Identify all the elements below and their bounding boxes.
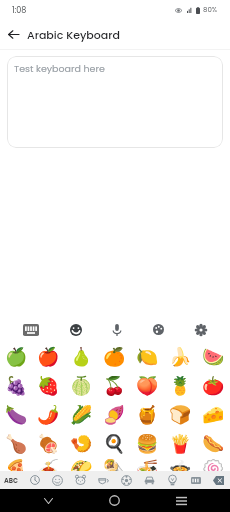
button[interactable]: Emoji	[65, 400, 98, 429]
staticText: 🍆	[5, 404, 28, 425]
staticText: 🍍	[169, 375, 192, 396]
button[interactable]: Home	[81, 489, 148, 512]
staticText: 🍞	[169, 404, 192, 425]
staticText: 🍈	[70, 375, 93, 396]
button[interactable]: Emoji	[0, 458, 32, 471]
button[interactable]: Food and drink	[92, 471, 115, 489]
staticText: 🍯	[136, 404, 159, 425]
button[interactable]: Emoji	[0, 400, 32, 429]
button[interactable]: Emoji	[98, 371, 131, 400]
staticText: 🌯	[103, 458, 126, 471]
button[interactable]: Emoji	[164, 458, 197, 471]
button[interactable]: Emoji	[197, 429, 230, 458]
button[interactable]: Emoji	[197, 400, 230, 429]
button[interactable]: Emoji	[65, 429, 98, 458]
staticText: 🌭	[202, 433, 225, 454]
button[interactable]: Travel and places	[138, 471, 161, 489]
button[interactable]: Emoji	[131, 400, 164, 429]
staticText: 🌮	[70, 458, 93, 471]
button[interactable]: Theme	[144, 313, 172, 342]
button[interactable]: Emoji	[197, 342, 230, 371]
button[interactable]: Voice input	[103, 313, 131, 342]
button[interactable]: Test keyboard here	[7, 56, 223, 148]
button[interactable]: Back	[2, 23, 25, 46]
staticText: 🍇	[5, 375, 28, 396]
button[interactable]: Emoji	[32, 429, 65, 458]
button[interactable]: Emoji	[98, 400, 131, 429]
button[interactable]: Symbols	[184, 471, 207, 489]
staticText: 🍊	[103, 346, 126, 367]
button[interactable]: Smileys and people	[46, 471, 69, 489]
staticText: 🍓	[37, 375, 60, 396]
button[interactable]: Emoji	[0, 371, 32, 400]
staticText: 🍠	[103, 404, 126, 425]
staticText: 🍳	[103, 433, 126, 454]
button[interactable]: Keyboard layout	[17, 313, 45, 342]
button[interactable]: Activities	[115, 471, 138, 489]
button[interactable]: Emoji	[32, 458, 65, 471]
staticText: ABC	[4, 476, 19, 485]
button[interactable]: Emoji	[197, 458, 230, 471]
button[interactable]: Emoji	[98, 342, 131, 371]
button[interactable]: Animals and nature	[69, 471, 92, 489]
button[interactable]: Emoji	[164, 400, 197, 429]
staticText: 🍤	[70, 433, 93, 454]
button[interactable]: Hide keyboard	[15, 489, 81, 512]
staticText: 🍥	[202, 458, 225, 471]
staticText: 🍔	[136, 433, 159, 454]
button[interactable]: Emoji	[65, 458, 98, 471]
button[interactable]: Emoji	[131, 458, 164, 471]
button[interactable]: Emoji	[131, 371, 164, 400]
button[interactable]: Emoji	[65, 371, 98, 400]
staticText: 🍋	[136, 346, 159, 367]
button[interactable]: Objects	[161, 471, 184, 489]
staticText: 1:08	[12, 5, 27, 16]
button[interactable]: Emoji	[197, 371, 230, 400]
staticText: 🌶	[37, 404, 60, 425]
staticText: 🍜	[136, 458, 159, 471]
button[interactable]: Recently used	[23, 471, 46, 489]
staticText: 🧀	[202, 404, 225, 425]
staticText: 🍟	[169, 433, 192, 454]
button[interactable]: Emoji	[98, 458, 131, 471]
button[interactable]: Emoji	[164, 371, 197, 400]
staticText: 🍏	[5, 346, 28, 367]
button[interactable]: Emoji	[131, 429, 164, 458]
staticText: 🍑	[136, 375, 159, 396]
staticText: 🍅	[202, 375, 225, 396]
staticText: 🍖	[37, 433, 60, 454]
staticText: Test keyboard here	[14, 62, 105, 75]
button[interactable]: Emoji	[131, 342, 164, 371]
staticText: 🍒	[103, 375, 126, 396]
button[interactable]: Emoji	[0, 342, 32, 371]
button[interactable]: Settings	[187, 313, 215, 342]
button[interactable]: Emoji	[164, 429, 197, 458]
staticText: 🍲	[169, 458, 192, 471]
button[interactable]: Emoji	[0, 429, 32, 458]
staticText: 🍉	[202, 346, 225, 367]
button[interactable]: Emoji	[164, 342, 197, 371]
staticText: Arabic Keyboard	[27, 27, 120, 42]
button[interactable]: Emoji	[32, 371, 65, 400]
staticText: 80%	[203, 5, 218, 15]
staticText: 🍝	[37, 458, 60, 471]
staticText: 🍐	[70, 346, 93, 367]
button[interactable]: Emoji	[65, 342, 98, 371]
button[interactable]: Emoji	[98, 429, 131, 458]
button[interactable]: Emoji	[62, 313, 90, 342]
button[interactable]: ABC	[0, 471, 23, 489]
button[interactable]: Recent apps	[148, 489, 215, 512]
staticText: 🍌	[169, 346, 192, 367]
staticText: 🌽	[70, 404, 93, 425]
staticText: 🍕	[5, 458, 28, 471]
staticText: 🍎	[37, 346, 60, 367]
button[interactable]: Emoji	[32, 342, 65, 371]
button[interactable]: Backspace	[207, 471, 230, 489]
button[interactable]: Emoji	[32, 400, 65, 429]
staticText: 🍗	[5, 433, 28, 454]
